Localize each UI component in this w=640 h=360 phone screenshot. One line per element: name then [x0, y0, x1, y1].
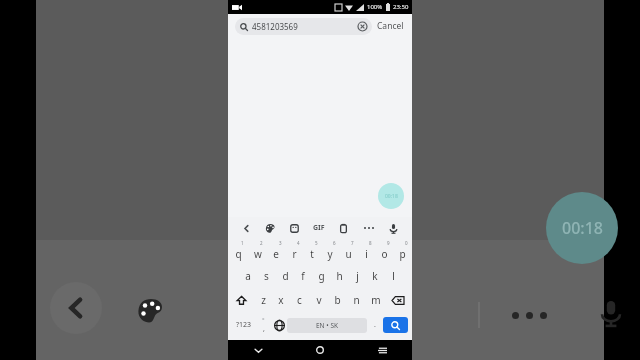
button[interactable]: Recent apps	[372, 340, 392, 360]
button[interactable]: n	[347, 288, 366, 312]
button[interactable]: h	[330, 264, 348, 288]
staticText: e	[273, 247, 279, 261]
button[interactable]: b	[328, 288, 347, 312]
button[interactable]: a	[238, 264, 257, 288]
staticText: 4	[297, 240, 300, 246]
button[interactable]: 1	[229, 239, 248, 264]
staticText: 9	[387, 240, 390, 246]
button[interactable]: c	[290, 288, 309, 312]
button[interactable]: s	[257, 264, 276, 288]
button[interactable]: 3	[267, 239, 285, 264]
staticText: 3	[279, 240, 282, 246]
staticText: x	[278, 293, 284, 307]
staticText: o	[381, 247, 388, 261]
button[interactable]: Shift	[229, 288, 254, 312]
button[interactable]: 2	[248, 239, 267, 264]
staticText: 2	[260, 240, 263, 246]
button[interactable]: EN • SK	[287, 318, 367, 333]
staticText: 0	[405, 240, 408, 246]
staticText: .	[374, 320, 376, 330]
button[interactable]: v	[309, 288, 328, 312]
staticText: f	[301, 269, 305, 283]
staticText: Cancel	[377, 20, 404, 32]
staticText: q	[235, 247, 242, 261]
button[interactable]: Clipboard	[331, 223, 356, 234]
button[interactable]: Clear text	[358, 22, 367, 31]
staticText: j	[356, 269, 359, 283]
button[interactable]: Voice input	[381, 223, 406, 234]
button[interactable]: 7	[339, 239, 357, 264]
staticText: 00:18	[562, 217, 603, 239]
staticText: 4581203569	[252, 21, 298, 32]
staticText: 1	[241, 240, 244, 246]
staticText: s	[264, 269, 269, 283]
button[interactable]: Back	[234, 223, 258, 234]
staticText: 100%	[367, 3, 383, 11]
button[interactable]: d	[276, 264, 294, 288]
button[interactable]: .	[367, 312, 382, 338]
staticText: p	[399, 247, 406, 261]
button[interactable]: 9	[375, 239, 393, 264]
button[interactable]: 5	[303, 239, 321, 264]
button[interactable]: GIF	[306, 223, 331, 233]
staticText: c	[297, 293, 302, 307]
staticText: 00:18	[385, 193, 398, 200]
staticText: y	[327, 247, 333, 261]
button[interactable]: Theme	[136, 296, 166, 326]
staticText: n	[353, 293, 360, 307]
button[interactable]: Cancel	[372, 20, 405, 32]
staticText: i	[365, 247, 368, 261]
button[interactable]: j	[348, 264, 366, 288]
button[interactable]: k	[366, 264, 384, 288]
staticText: ?123	[236, 320, 252, 330]
staticText: l	[392, 269, 395, 283]
staticText: m	[371, 293, 381, 307]
staticText: 23:50	[393, 3, 409, 11]
staticText: u	[345, 247, 352, 261]
staticText: a	[245, 269, 251, 283]
staticText: h	[336, 269, 343, 283]
button[interactable]: Stickers	[282, 223, 306, 234]
staticText: 8	[369, 240, 372, 246]
button[interactable]: Backspace	[385, 288, 411, 312]
button[interactable]: z	[254, 288, 272, 312]
staticText: °	[262, 316, 265, 324]
button[interactable]: f	[294, 264, 312, 288]
button[interactable]: 0	[393, 239, 411, 264]
button[interactable]: Themes	[258, 223, 282, 234]
staticText: 6	[333, 240, 336, 246]
staticText: g	[318, 269, 325, 283]
staticText: GIF	[313, 223, 325, 233]
staticText: 7	[351, 240, 354, 246]
staticText: z	[261, 293, 266, 307]
button[interactable]: 4581203569	[235, 18, 372, 35]
staticText: EN • SK	[316, 321, 338, 330]
button[interactable]: ?123	[231, 312, 256, 338]
button[interactable]: g	[312, 264, 330, 288]
button[interactable]: x	[272, 288, 290, 312]
button[interactable]: Back	[50, 282, 102, 334]
button[interactable]: m	[366, 288, 385, 312]
button[interactable]: 8	[357, 239, 375, 264]
staticText: d	[282, 269, 289, 283]
staticText: 5	[315, 240, 318, 246]
button[interactable]: More options	[356, 227, 381, 229]
button[interactable]: Change language	[271, 312, 287, 338]
staticText: ,	[263, 324, 265, 334]
staticText: w	[254, 247, 262, 261]
button[interactable]: Back	[248, 340, 268, 360]
staticText: r	[292, 247, 297, 261]
button[interactable]: l	[384, 264, 402, 288]
button[interactable]: °	[256, 312, 271, 338]
staticText: b	[334, 293, 341, 307]
staticText: v	[316, 293, 322, 307]
button[interactable]: 6	[321, 239, 339, 264]
staticText: t	[310, 247, 314, 261]
button[interactable]: Voice input	[596, 298, 626, 328]
button[interactable]: More options	[512, 312, 547, 319]
button[interactable]: Search	[383, 317, 408, 333]
button[interactable]: 4	[285, 239, 303, 264]
button[interactable]: Home	[310, 340, 330, 360]
staticText: k	[372, 269, 378, 283]
